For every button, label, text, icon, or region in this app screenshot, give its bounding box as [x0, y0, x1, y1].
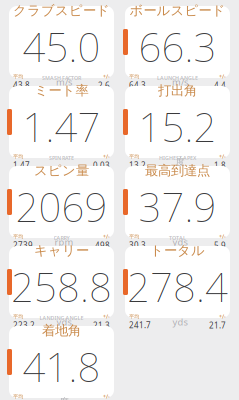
staticText: 223.2: [13, 320, 35, 330]
staticText: 2069: [15, 180, 107, 233]
staticText: +/-: [103, 153, 110, 160]
staticText: 平均: [13, 73, 23, 80]
staticText: 1.8: [214, 160, 226, 171]
staticText: 30.3: [129, 240, 146, 250]
button[interactable]: SPIN RATE: [7, 166, 116, 238]
staticText: 37.9: [138, 180, 216, 233]
staticText: 1.47: [13, 160, 30, 170]
staticText: 平均: [129, 73, 139, 80]
staticText: クラブスピード: [13, 2, 110, 19]
staticText: +/-: [103, 73, 110, 80]
staticText: 2739: [13, 240, 33, 250]
staticText: スピン量: [34, 162, 89, 179]
staticText: 13.2: [129, 160, 146, 170]
staticText: SPIN RATE: [49, 154, 74, 161]
staticText: 度: [59, 396, 68, 400]
staticText: 度: [175, 156, 184, 168]
staticText: 21.7: [209, 320, 226, 331]
button[interactable]: HIGHEST APEX: [123, 166, 232, 238]
staticText: rpm: [54, 236, 73, 248]
staticText: +/-: [219, 233, 226, 240]
staticText: +/-: [103, 233, 110, 240]
staticText: 45.0: [22, 20, 100, 73]
staticText: 41.8: [22, 340, 100, 393]
staticText: キャリー: [34, 242, 89, 259]
staticText: 平均: [129, 313, 139, 320]
staticText: 2.6: [98, 80, 110, 91]
staticText: 平均: [13, 393, 23, 400]
staticText: HIGHEST APEX: [159, 154, 196, 161]
staticText: 43.8: [13, 80, 30, 90]
staticText: 278.4: [127, 260, 228, 313]
staticText: +/-: [103, 313, 110, 320]
staticText: 着地角: [42, 322, 81, 339]
staticText: 平均: [129, 153, 139, 160]
staticText: 平均: [13, 153, 23, 160]
staticText: +/-: [219, 73, 226, 80]
button[interactable]: CARRY: [7, 246, 116, 318]
staticText: 打出角: [158, 82, 197, 99]
staticText: m/s: [172, 76, 188, 88]
staticText: +/-: [103, 393, 110, 400]
staticText: 平均: [13, 233, 23, 240]
button[interactable]: LAUNCH ANGLE: [123, 86, 232, 158]
staticText: LANDING ANGLE: [39, 314, 83, 321]
staticText: 64.3: [129, 80, 146, 90]
staticText: 258.8: [11, 260, 112, 313]
staticText: yds: [56, 316, 71, 328]
staticText: 66.3: [138, 20, 216, 73]
staticText: yds: [172, 316, 187, 328]
staticText: ボールスピード: [129, 2, 225, 19]
button[interactable]: BALL SPEED: [123, 6, 232, 78]
staticText: m/s: [56, 76, 72, 88]
staticText: 21.3: [93, 320, 110, 331]
staticText: +/-: [219, 153, 226, 160]
staticText: ミート率: [34, 82, 88, 99]
button[interactable]: SMASH FACTOR: [7, 86, 116, 158]
button[interactable]: LANDING ANGLE: [7, 326, 116, 398]
staticText: 498: [95, 240, 110, 251]
staticText: SMASH FACTOR: [42, 74, 81, 81]
staticText: 0.03: [93, 160, 110, 171]
staticText: 5.9: [214, 240, 226, 251]
button[interactable]: TOTAL: [123, 246, 232, 318]
staticText: トータル: [150, 242, 205, 259]
button[interactable]: CLUB SPEED: [7, 6, 116, 78]
staticText: 平均: [129, 233, 139, 240]
staticText: 15.2: [138, 100, 216, 153]
staticText: 241.7: [129, 320, 151, 330]
staticText: +/-: [219, 313, 226, 320]
staticText: 平均: [13, 313, 23, 320]
staticText: 4.4: [214, 80, 226, 91]
staticText: TOTAL: [169, 234, 186, 241]
staticText: LAUNCH ANGLE: [157, 74, 198, 81]
staticText: 最高到達点: [145, 162, 210, 179]
staticText: yds: [172, 236, 187, 248]
staticText: CARRY: [53, 234, 69, 241]
staticText: 1.47: [22, 100, 100, 153]
